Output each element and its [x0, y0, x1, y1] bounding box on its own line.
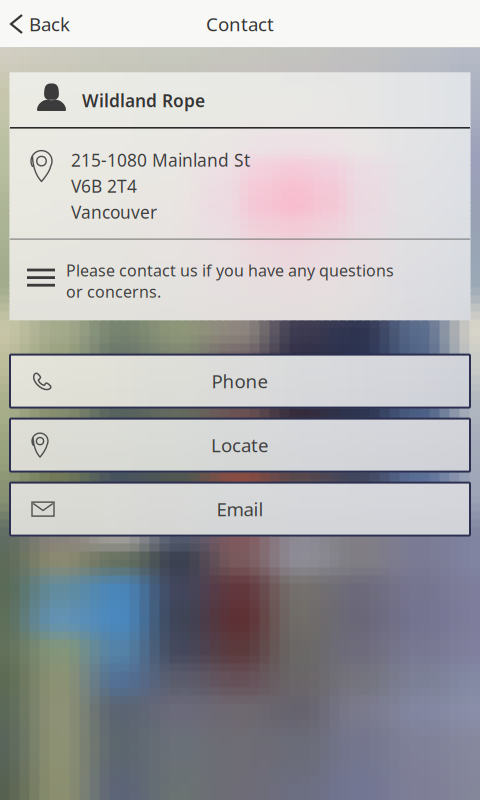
staticText: Email [216, 497, 263, 521]
staticText: Locate [211, 433, 269, 457]
button[interactable]: Phone [10, 355, 470, 408]
staticText: Please contact us if you have any questi… [66, 260, 394, 302]
staticText: Phone [211, 369, 268, 393]
staticText: Wildland Rope [82, 89, 205, 112]
button[interactable]: Email [10, 483, 470, 536]
staticText: Back [29, 12, 70, 36]
button[interactable]: Locate [10, 419, 470, 472]
button[interactable]: Back [0, 3, 82, 45]
staticText: Vancouver [71, 201, 157, 224]
staticText: V6B 2T4 [71, 175, 137, 198]
staticText: Contact [206, 12, 274, 36]
staticText: 215-1080 Mainland St [71, 149, 250, 172]
